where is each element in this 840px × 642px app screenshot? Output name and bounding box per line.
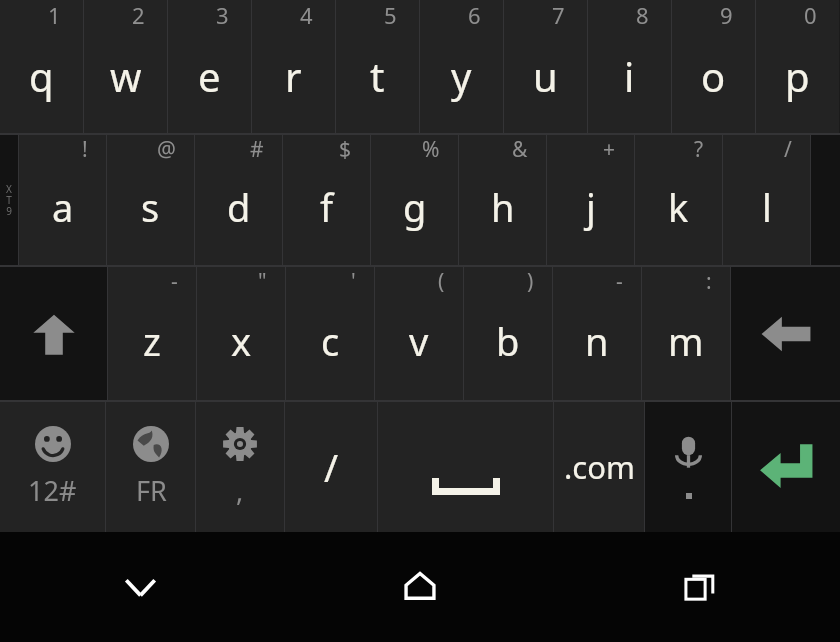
staticText: 6	[468, 0, 481, 30]
staticText: y	[451, 49, 472, 103]
button[interactable]: $	[283, 135, 370, 265]
staticText: a	[52, 181, 74, 233]
staticText: k	[668, 181, 689, 233]
staticText: w	[110, 49, 142, 103]
button[interactable]: Enter	[732, 402, 840, 532]
staticText: )	[527, 267, 534, 296]
staticText: /	[784, 135, 792, 164]
staticText: X T 9	[6, 182, 12, 218]
button[interactable]: Settings	[196, 402, 284, 532]
button[interactable]: Voice input	[645, 402, 731, 532]
button[interactable]: /	[285, 402, 377, 532]
staticText: u	[533, 49, 558, 103]
staticText: "	[258, 267, 267, 296]
staticText: n	[585, 315, 609, 367]
button[interactable]: Hide keyboard	[0, 532, 280, 642]
staticText: c	[321, 315, 340, 367]
staticText: p	[785, 49, 810, 103]
staticText: s	[141, 181, 160, 233]
staticText: +	[603, 135, 616, 164]
staticText: e	[198, 49, 221, 103]
staticText: h	[491, 181, 515, 233]
button[interactable]: :	[642, 267, 730, 400]
staticText: f	[320, 181, 334, 233]
staticText: d	[227, 181, 251, 233]
button[interactable]: 0	[756, 0, 839, 133]
staticText: x	[231, 315, 252, 367]
button[interactable]: #	[195, 135, 282, 265]
staticText: 12#	[28, 472, 77, 509]
button[interactable]: Emoji	[0, 402, 105, 532]
button[interactable]: Home	[280, 532, 560, 642]
staticText: 2	[132, 0, 145, 30]
staticText: q	[29, 49, 54, 103]
staticText: 3	[216, 0, 229, 30]
staticText: #	[250, 135, 264, 164]
staticText: i	[624, 49, 635, 103]
button[interactable]: Backspace	[731, 267, 840, 400]
button[interactable]: 4	[252, 0, 335, 133]
staticText: 0	[804, 0, 817, 30]
staticText: .com	[564, 446, 635, 488]
staticText: 4	[300, 0, 313, 30]
button[interactable]: (	[375, 267, 463, 400]
staticText: v	[409, 315, 429, 367]
staticText: '	[351, 267, 356, 296]
staticText: t	[370, 49, 385, 103]
button[interactable]: Space	[378, 402, 553, 532]
button[interactable]: 6	[420, 0, 503, 133]
button[interactable]: XT9	[0, 135, 18, 265]
staticText: $	[339, 135, 352, 164]
staticText: (	[438, 267, 445, 296]
staticText: @	[157, 135, 176, 164]
button[interactable]: Shift	[0, 267, 107, 400]
staticText: &	[512, 135, 528, 164]
button[interactable]: &	[459, 135, 546, 265]
staticText: -	[171, 267, 178, 296]
button[interactable]: -	[108, 267, 196, 400]
staticText: 1	[48, 0, 61, 30]
staticText: 9	[720, 0, 733, 30]
staticText: b	[496, 315, 520, 367]
staticText: 7	[552, 0, 565, 30]
button[interactable]: '	[286, 267, 374, 400]
button[interactable]: -	[553, 267, 641, 400]
staticText: l	[762, 181, 772, 233]
staticText: g	[403, 181, 427, 233]
button[interactable]: 5	[336, 0, 419, 133]
button[interactable]: 3	[168, 0, 251, 133]
staticText: !	[82, 135, 88, 164]
staticText: j	[586, 181, 596, 233]
button[interactable]: .com	[554, 402, 644, 532]
staticText: o	[701, 49, 726, 103]
button[interactable]: 9	[672, 0, 755, 133]
button[interactable]: Change language	[106, 402, 195, 532]
staticText: :	[706, 267, 712, 296]
staticText: ,	[236, 472, 244, 509]
button[interactable]: Recents	[560, 532, 840, 642]
staticText: -	[616, 267, 623, 296]
staticText: FR	[136, 472, 167, 509]
button[interactable]: +	[547, 135, 634, 265]
button[interactable]: /	[723, 135, 810, 265]
button[interactable]: )	[464, 267, 552, 400]
staticText: 5	[384, 0, 397, 30]
button[interactable]: 7	[504, 0, 587, 133]
staticText: %	[422, 135, 440, 164]
button[interactable]: ?	[635, 135, 722, 265]
button[interactable]: !	[19, 135, 106, 265]
staticText: ?	[694, 135, 704, 164]
button[interactable]: %	[371, 135, 458, 265]
button[interactable]: @	[107, 135, 194, 265]
staticText: m	[668, 315, 704, 367]
button[interactable]: "	[197, 267, 285, 400]
staticText: z	[143, 315, 161, 367]
staticText: 8	[636, 0, 649, 30]
staticText: r	[285, 49, 302, 103]
button[interactable]: 1	[0, 0, 83, 133]
staticText: /	[324, 441, 339, 493]
button[interactable]: 8	[588, 0, 671, 133]
button[interactable]: 2	[84, 0, 167, 133]
